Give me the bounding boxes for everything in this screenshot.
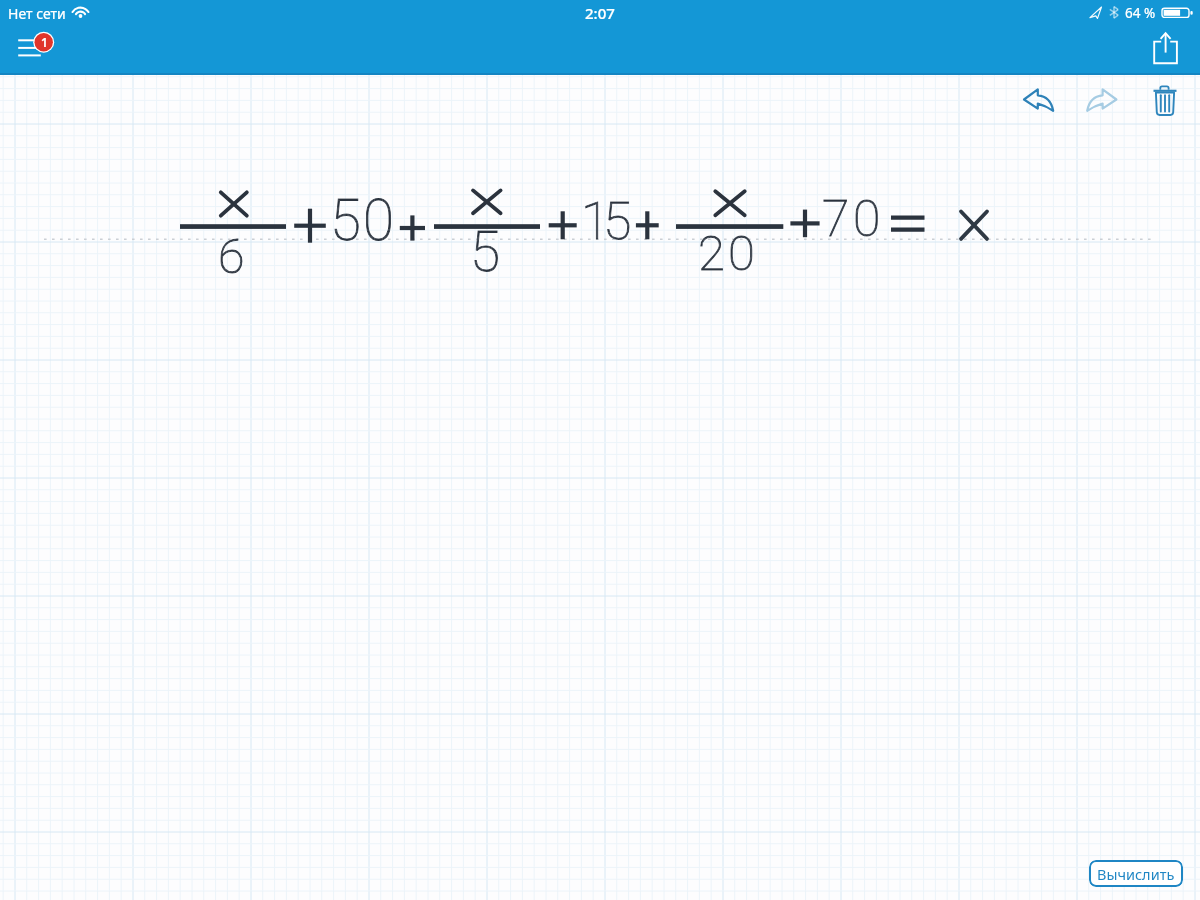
staticText: 2:07 (585, 3, 615, 23)
staticText: 5 (470, 220, 501, 284)
staticText: 6 (218, 228, 245, 285)
staticText: 0 (728, 225, 755, 282)
staticText: 7 (822, 190, 850, 249)
button[interactable] (10, 30, 56, 56)
button[interactable] (1146, 28, 1186, 70)
staticText: 1 (581, 191, 610, 252)
button[interactable] (1016, 80, 1062, 120)
staticText: 5 (603, 191, 632, 252)
staticText: 0 (363, 188, 394, 254)
staticText: 7 (822, 190, 850, 249)
staticText: 5 (330, 188, 361, 254)
staticText: 0 (728, 225, 755, 282)
staticText: 1 (41, 34, 48, 50)
staticText: 0 (853, 190, 881, 249)
staticText: 6 (218, 228, 245, 285)
staticText: 2 (698, 225, 725, 282)
staticText: Вычислить (1097, 864, 1175, 884)
staticText: Нет сети (8, 4, 66, 23)
staticText: 5 (603, 191, 632, 252)
staticText: 1 (581, 191, 610, 252)
staticText: 0 (363, 188, 394, 254)
staticText: 64 % (1125, 4, 1156, 22)
staticText: 0 (853, 190, 881, 249)
staticText: 5 (330, 188, 361, 254)
button[interactable] (1080, 80, 1126, 120)
staticText: 5 (470, 220, 501, 284)
button[interactable] (1146, 80, 1186, 120)
button[interactable]: Вычислить (1089, 860, 1183, 887)
staticText: 2 (698, 225, 725, 282)
